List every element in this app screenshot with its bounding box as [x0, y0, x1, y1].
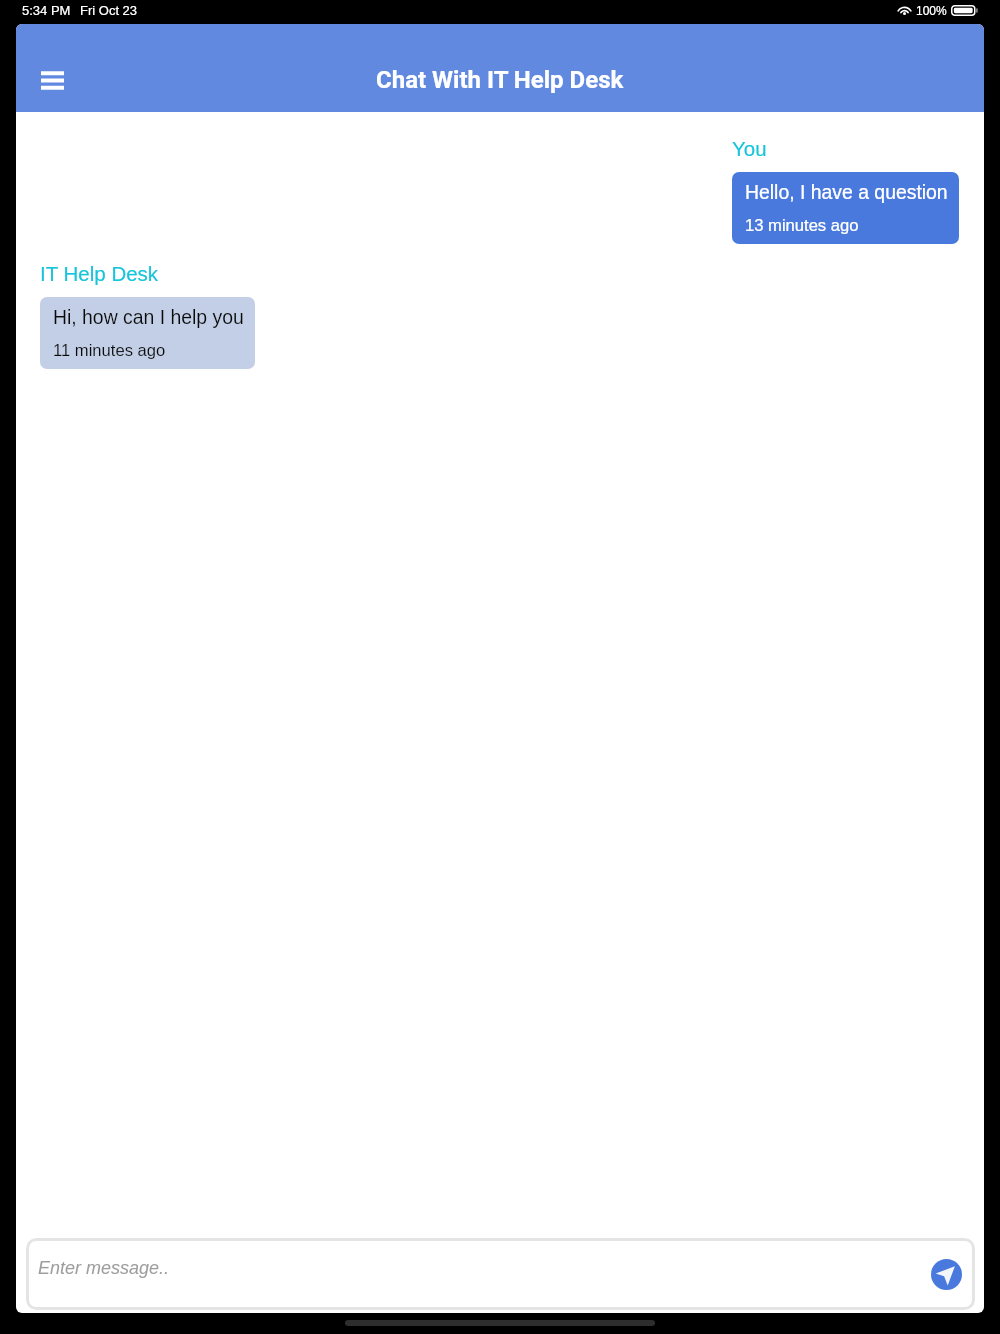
staticText: Chat With IT Help Desk	[376, 66, 624, 94]
staticText: 100%	[916, 4, 947, 17]
staticText: You	[732, 137, 767, 160]
staticText: Hi, how can I help you	[53, 306, 244, 328]
button[interactable]: Open navigation menu	[28, 56, 76, 104]
staticText: IT Help Desk	[40, 262, 159, 285]
button[interactable]: Hello, I have a question	[732, 172, 959, 244]
button[interactable]: Enter message..	[26, 1238, 975, 1310]
staticText: 5:34 PM	[22, 3, 71, 18]
button[interactable]: Hi, how can I help you	[40, 297, 255, 369]
staticText: 13 minutes ago	[745, 216, 859, 235]
staticText: Enter message..	[38, 1258, 170, 1278]
button[interactable]: Send message	[931, 1259, 962, 1290]
staticText: Hello, I have a question	[745, 181, 948, 203]
staticText: Fri Oct 23	[80, 3, 138, 18]
staticText: 11 minutes ago	[53, 341, 166, 360]
